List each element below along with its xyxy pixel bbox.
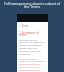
staticText: Full transparency about a subset of the … xyxy=(2,1,62,9)
staticText: Welcome to our platform. By using this s… xyxy=(19,38,46,56)
staticText: ‹ Terms xyxy=(19,24,29,28)
staticText: These provisions govern your access and … xyxy=(19,57,46,72)
staticText: 1. Acceptance of terms xyxy=(19,31,46,37)
